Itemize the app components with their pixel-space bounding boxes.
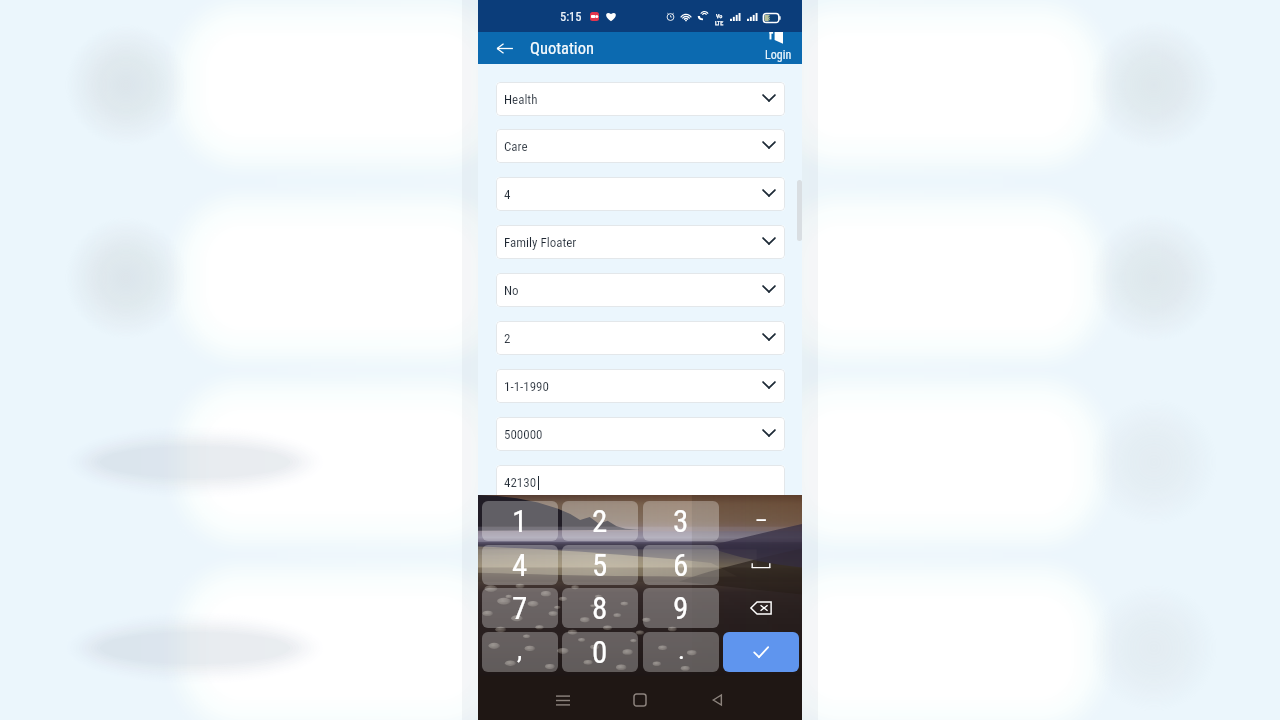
button[interactable]: 9 [643,588,719,628]
staticText: Care [504,139,528,154]
button[interactable]: , [482,632,558,672]
staticText: Login [765,48,792,62]
staticText: 42130 [504,475,537,490]
button[interactable]: Back [701,684,733,716]
staticText: 4 [512,547,528,583]
button[interactable]: 6 [643,545,719,585]
button[interactable]: 3 [643,501,719,541]
staticText: 2 [504,331,511,346]
staticText: 1 [512,503,528,539]
staticText: 30 [768,14,776,23]
button[interactable]: 1-1-1990 [496,369,785,403]
button[interactable]: Login [763,32,793,64]
staticText: Family Floater [504,235,577,250]
staticText: 2 [592,503,608,539]
button[interactable]: 500000 [496,417,785,451]
button[interactable]: 2 [496,321,785,355]
staticText: 1-1-1990 [504,379,549,394]
button[interactable]: 8 [562,588,638,628]
staticText: – [755,508,768,534]
staticText: Vo [716,12,723,19]
staticText: 4 [504,187,511,202]
staticText: 6 [673,547,689,583]
button[interactable]: Minus [723,501,799,541]
staticText: 7 [512,590,528,626]
button[interactable]: 4 [496,177,785,211]
button[interactable]: No [496,273,785,307]
button[interactable]: Care [496,129,785,163]
button[interactable]: Enter [723,632,799,672]
staticText: , [517,635,523,665]
button[interactable]: 4 [482,545,558,585]
button[interactable]: 1 [482,501,558,541]
button[interactable]: Family Floater [496,225,785,259]
staticText: 9 [673,590,689,626]
staticText: 500000 [504,427,543,442]
button[interactable]: Home [624,684,656,716]
staticText: 0 [592,634,608,670]
button[interactable]: 5 [562,545,638,585]
button[interactable]: . [643,632,719,672]
button[interactable]: Recent apps [547,684,579,716]
button[interactable]: 42130 [496,465,785,499]
staticText: 5:15 [560,9,582,24]
staticText: No [504,283,519,298]
staticText: . [678,635,685,665]
staticText: 3 [673,503,689,539]
staticText: LTE [715,19,724,26]
button[interactable]: 7 [482,588,558,628]
button[interactable]: Back [486,32,524,64]
button[interactable]: 2 [562,501,638,541]
staticText: Health [504,92,538,107]
staticText: 5 [592,547,608,583]
staticText: Quotation [530,39,594,58]
button[interactable]: Space [723,545,799,585]
button[interactable]: Health [496,82,785,116]
button[interactable]: Backspace [723,588,799,628]
staticText: 8 [592,590,608,626]
button[interactable]: 0 [562,632,638,672]
